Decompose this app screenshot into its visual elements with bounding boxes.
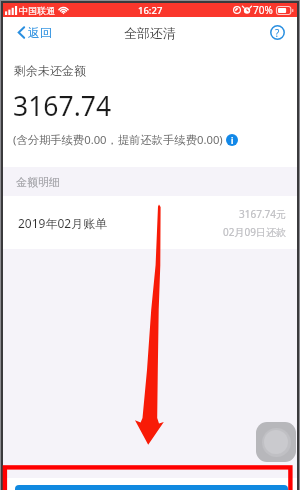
staticText: 16:27 — [138, 4, 163, 17]
staticText: i — [231, 135, 234, 146]
staticText: 中国联通 — [19, 5, 55, 16]
staticText: 02月09日还款 — [223, 225, 286, 239]
button[interactable]: 确认还款 — [15, 485, 288, 490]
button[interactable]: Help — [269, 24, 286, 41]
staticText: 2019年02月账单 — [18, 215, 108, 231]
staticText: ? — [275, 26, 280, 40]
button[interactable]: 2019年02月账单 — [3, 196, 297, 249]
staticText: (含分期手续费0.00，提前还款手续费0.00) — [13, 132, 223, 147]
button[interactable]: Assistive touch — [256, 422, 296, 462]
staticText: 剩余未还金额 — [14, 63, 86, 78]
button[interactable]: Info — [226, 134, 238, 146]
staticText: 3167.74 — [13, 88, 112, 124]
staticText: 返回 — [28, 25, 52, 40]
button[interactable]: 返回 — [17, 21, 53, 44]
staticText: 70% — [253, 3, 273, 17]
staticText: 全部还清 — [124, 25, 176, 41]
staticText: 3167.74元 — [239, 207, 286, 221]
staticText: 金额明细 — [16, 175, 60, 189]
